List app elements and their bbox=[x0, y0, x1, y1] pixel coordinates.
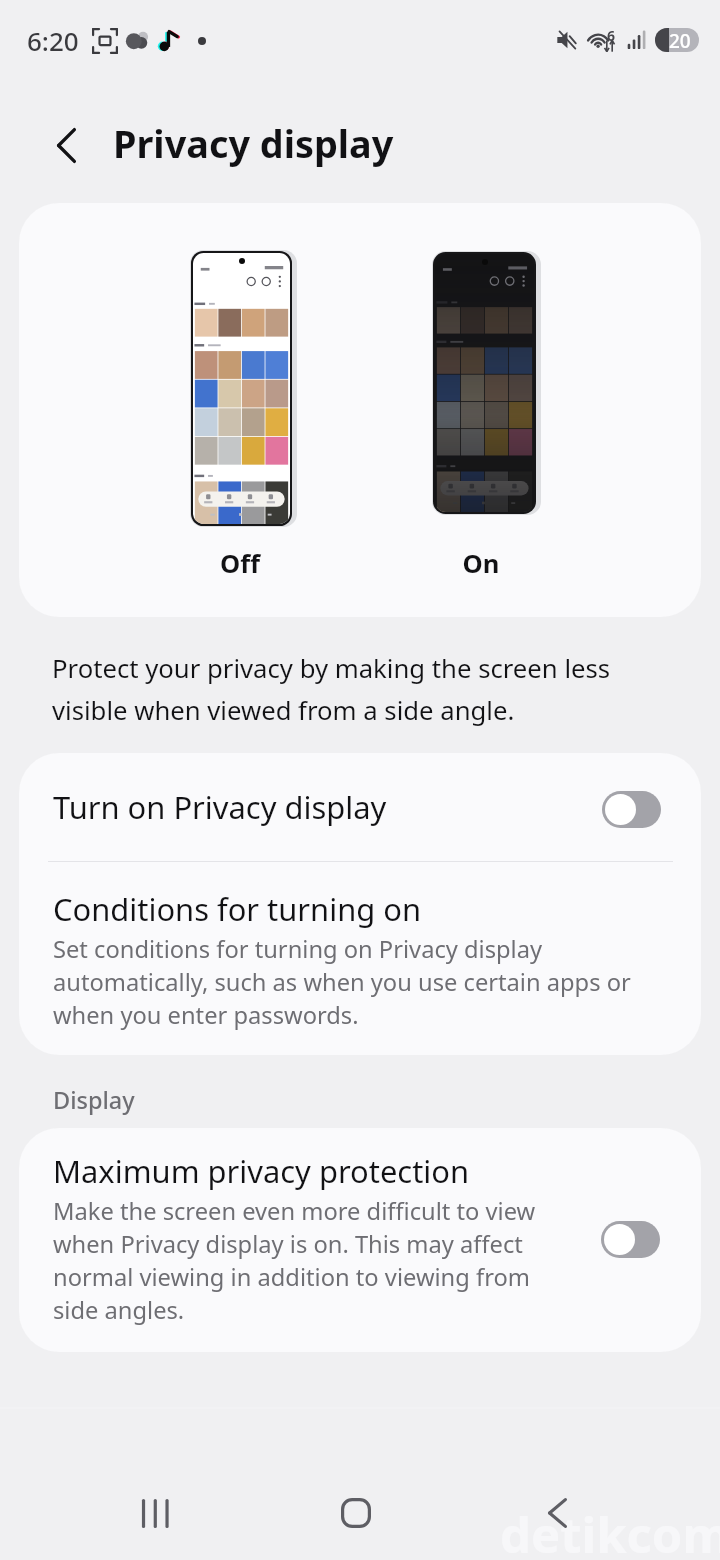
button[interactable]: Back bbox=[36, 115, 96, 175]
staticText: Make the screen even more difficult to v… bbox=[53, 1194, 553, 1326]
button[interactable]: Turn on Privacy display bbox=[19, 753, 701, 861]
staticText: Maximum privacy protection bbox=[53, 1152, 470, 1192]
staticText: Turn on Privacy display bbox=[53, 786, 602, 828]
staticText: Set conditions for turning on Privacy di… bbox=[53, 932, 643, 1031]
button[interactable]: Toggle bbox=[602, 791, 661, 828]
staticText: 6:20 bbox=[27, 23, 79, 58]
button[interactable]: Back bbox=[517, 1473, 597, 1553]
button[interactable]: Home bbox=[316, 1473, 396, 1553]
button[interactable]: Conditions for turning on bbox=[19, 862, 701, 1031]
staticText: Privacy display bbox=[113, 120, 394, 168]
staticText: Conditions for turning on bbox=[53, 890, 422, 930]
staticText: Protect your privacy by making the scree… bbox=[52, 645, 632, 729]
staticText: 20 bbox=[669, 28, 691, 52]
staticText: Off bbox=[179, 546, 301, 581]
button[interactable]: Toggle bbox=[601, 1221, 660, 1258]
staticText: detikcom bbox=[500, 1509, 720, 1560]
button[interactable]: Recents bbox=[115, 1473, 195, 1553]
staticText: On bbox=[420, 546, 542, 581]
staticText: 6 bbox=[607, 26, 616, 45]
button[interactable]: Maximum privacy protection bbox=[19, 1128, 701, 1352]
staticText: Display bbox=[53, 1084, 135, 1116]
